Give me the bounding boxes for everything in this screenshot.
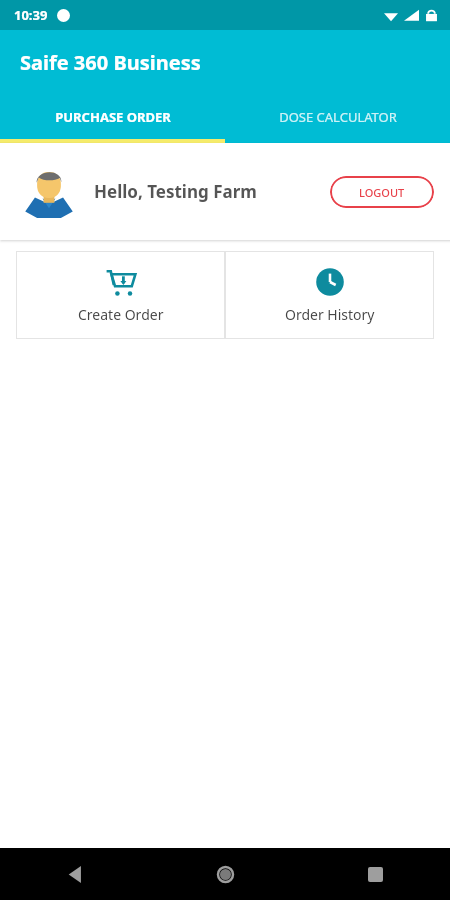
staticText: LOGOUT (359, 185, 405, 200)
staticText: Order History (285, 305, 375, 324)
button[interactable]: Home (150, 848, 300, 900)
staticText: Saife 360 Business (20, 49, 201, 76)
staticText: Create Order (78, 305, 164, 324)
other: Create Order (106, 267, 136, 297)
button[interactable]: Back (0, 848, 150, 900)
staticText: Hello, Testing Farm (94, 180, 257, 203)
button[interactable]: PURCHASE ORDER (0, 95, 225, 139)
button[interactable]: LOGOUT (330, 176, 434, 208)
button[interactable]: Hello, Testing Farm (0, 143, 450, 240)
button[interactable]: Create Order (16, 251, 225, 339)
staticText: PURCHASE ORDER (55, 108, 171, 126)
staticText: 10:39 (14, 6, 48, 24)
other: Order History (315, 267, 345, 297)
button[interactable]: Recent apps (300, 848, 450, 900)
button[interactable]: Order History (225, 251, 434, 339)
staticText: DOSE CALCULATOR (279, 108, 397, 126)
button[interactable]: DOSE CALCULATOR (225, 95, 450, 139)
